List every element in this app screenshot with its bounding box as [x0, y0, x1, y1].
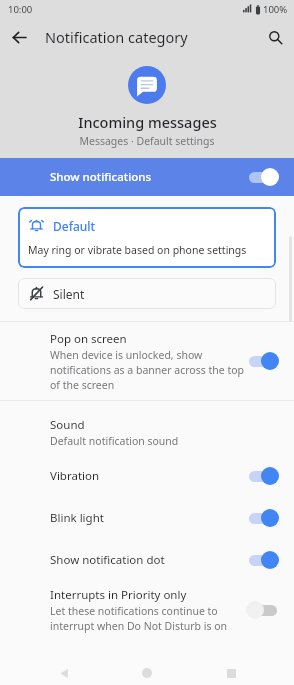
staticText: Blink light [50, 510, 104, 526]
button[interactable]: Home [127, 661, 167, 685]
button[interactable]: Recents [211, 661, 251, 685]
staticText: Messages · Default settings [79, 134, 215, 148]
button[interactable]: Default [18, 207, 276, 268]
button[interactable]: Vibration [0, 455, 294, 497]
staticText: May ring or vibrate based on phone setti… [28, 243, 247, 257]
button[interactable]: Blink light [0, 497, 294, 539]
button[interactable]: Interrupts in Priority only [0, 581, 294, 639]
button[interactable]: Back [0, 18, 38, 56]
staticText: Pop on screen [50, 331, 127, 347]
staticText: Sound [50, 417, 85, 433]
staticText: Default notification sound [50, 434, 179, 448]
button[interactable]: Sound [0, 409, 294, 455]
button[interactable]: Show notifications [0, 158, 294, 196]
staticText: Show notifications [50, 169, 246, 185]
staticText: Notification category [45, 27, 256, 47]
staticText: Let these notifications continue to inte… [50, 604, 246, 633]
button[interactable]: Show notification dot [0, 539, 294, 581]
staticText: 10:00 [8, 3, 33, 16]
staticText: Default [53, 218, 96, 234]
staticText: Interrupts in Priority only [50, 587, 187, 603]
staticText: Vibration [50, 468, 100, 484]
staticText: 100% [263, 3, 288, 16]
staticText: Incoming messages [78, 112, 217, 132]
staticText: Silent [53, 286, 85, 302]
staticText: Show notification dot [50, 552, 165, 568]
button[interactable]: Pop on screen [0, 322, 294, 400]
button[interactable]: Silent [18, 278, 276, 309]
button[interactable]: Search [256, 18, 294, 56]
staticText: When device is unlocked, show notificati… [50, 348, 246, 392]
button[interactable]: Back [44, 661, 84, 685]
